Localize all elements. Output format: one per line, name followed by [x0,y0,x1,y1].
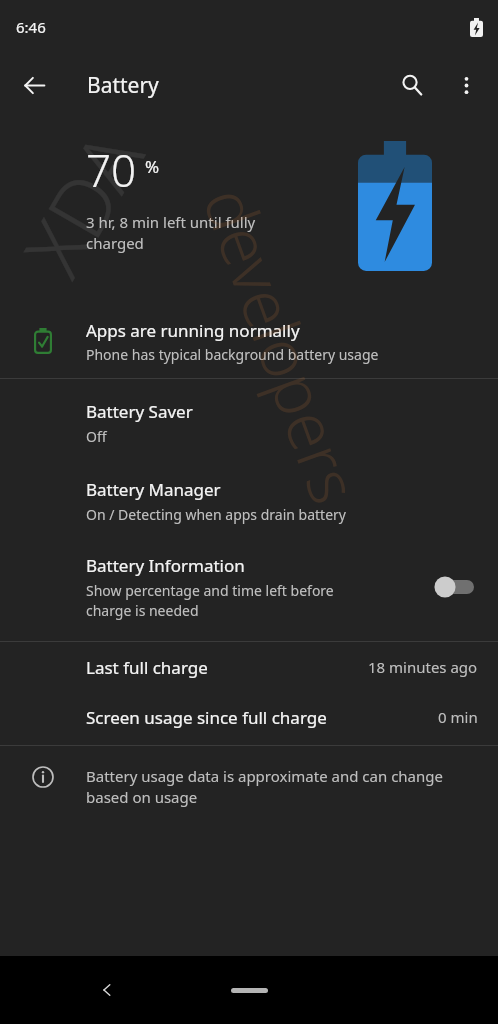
staticText: Battery usage data is approximate and ca… [86,766,443,808]
other: Battery charging [470,18,483,37]
button[interactable]: Search [388,61,436,109]
staticText: 3 hr, 8 min left until fully charged [86,212,256,254]
staticText: 70 [86,140,137,200]
staticText: Last full charge [86,656,208,679]
staticText: 6:46 [16,17,46,37]
button[interactable]: Battery Manager [0,462,498,540]
staticText: Screen usage since full charge [86,706,327,729]
button[interactable]: Apps are running normally [0,304,498,378]
button[interactable]: More options [442,61,490,109]
button[interactable]: Back [10,61,58,109]
staticText: Battery [87,71,159,100]
button[interactable]: Last full charge [0,642,498,692]
staticText: developers [184,175,382,515]
button[interactable]: Battery Saver [0,384,498,462]
staticText: Battery Saver [86,400,193,423]
button[interactable]: Screen usage since full charge [0,692,498,742]
staticText: Battery Manager [86,478,221,501]
button[interactable]: Home [231,988,268,993]
staticText: Off [86,427,107,446]
staticText: XDA [0,111,166,294]
button[interactable]: Battery Information [0,540,498,634]
staticText: Apps are running normally [86,319,300,342]
staticText: Phone has typical background battery usa… [86,345,379,364]
staticText: 18 minutes ago [368,657,478,677]
staticText: On / Detecting when apps drain battery [86,505,346,524]
staticText: % [145,155,160,178]
staticText: Show percentage and time left before cha… [86,581,334,620]
staticText: 0 min [438,707,478,727]
button[interactable]: Battery Information toggle [432,571,482,603]
button[interactable]: Back [85,968,129,1012]
staticText: Battery Information [86,554,245,577]
